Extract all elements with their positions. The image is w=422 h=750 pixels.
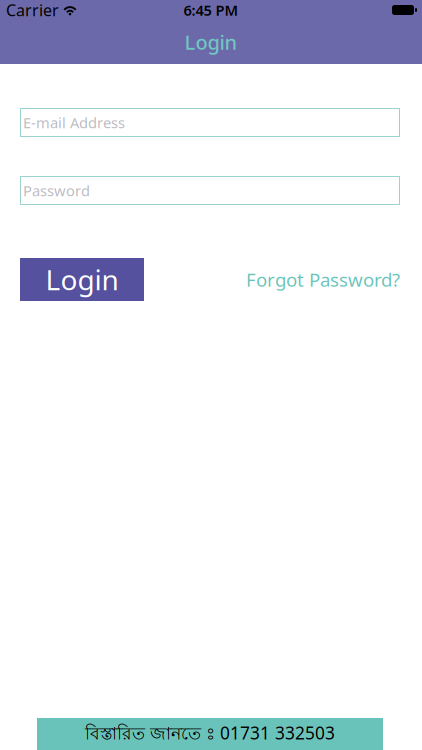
- button[interactable]: Password: [20, 176, 400, 205]
- staticText: Forgot Password?: [246, 267, 400, 292]
- button[interactable]: বিস্তারিত জানতে ঃ 01731 332503: [37, 718, 383, 750]
- staticText: 6:45 PM: [183, 0, 238, 20]
- staticText: Login: [184, 29, 237, 55]
- staticText: Password: [23, 181, 90, 200]
- staticText: E-mail Address: [23, 113, 125, 132]
- staticText: Carrier: [6, 0, 59, 21]
- staticText: বিস্তারিত জানতে ঃ 01731 332503: [85, 721, 335, 747]
- button[interactable]: Login: [20, 258, 144, 301]
- staticText: Login: [45, 261, 118, 298]
- button[interactable]: Forgot Password?: [246, 267, 400, 292]
- button[interactable]: E-mail Address: [20, 108, 400, 137]
